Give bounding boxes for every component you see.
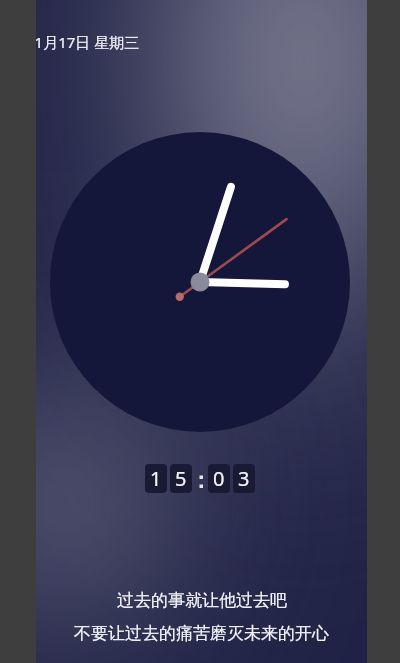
staticText: 0	[213, 465, 225, 492]
staticText: 5	[175, 465, 187, 492]
button[interactable]: Digital clock 15:03	[145, 464, 255, 493]
button[interactable]: 过去的事就让他过去吧	[36, 590, 367, 644]
staticText: 11月17日 星期三	[36, 32, 140, 52]
staticText: 过去的事就让他过去吧	[117, 590, 287, 611]
staticText: 不要让过去的痛苦磨灭未来的开心	[74, 623, 329, 644]
button[interactable]: 11月17日 星期三	[36, 32, 140, 52]
button[interactable]: Analog clock, 3:03	[50, 132, 350, 432]
staticText: 3	[238, 465, 250, 492]
staticText: 1	[150, 465, 162, 492]
